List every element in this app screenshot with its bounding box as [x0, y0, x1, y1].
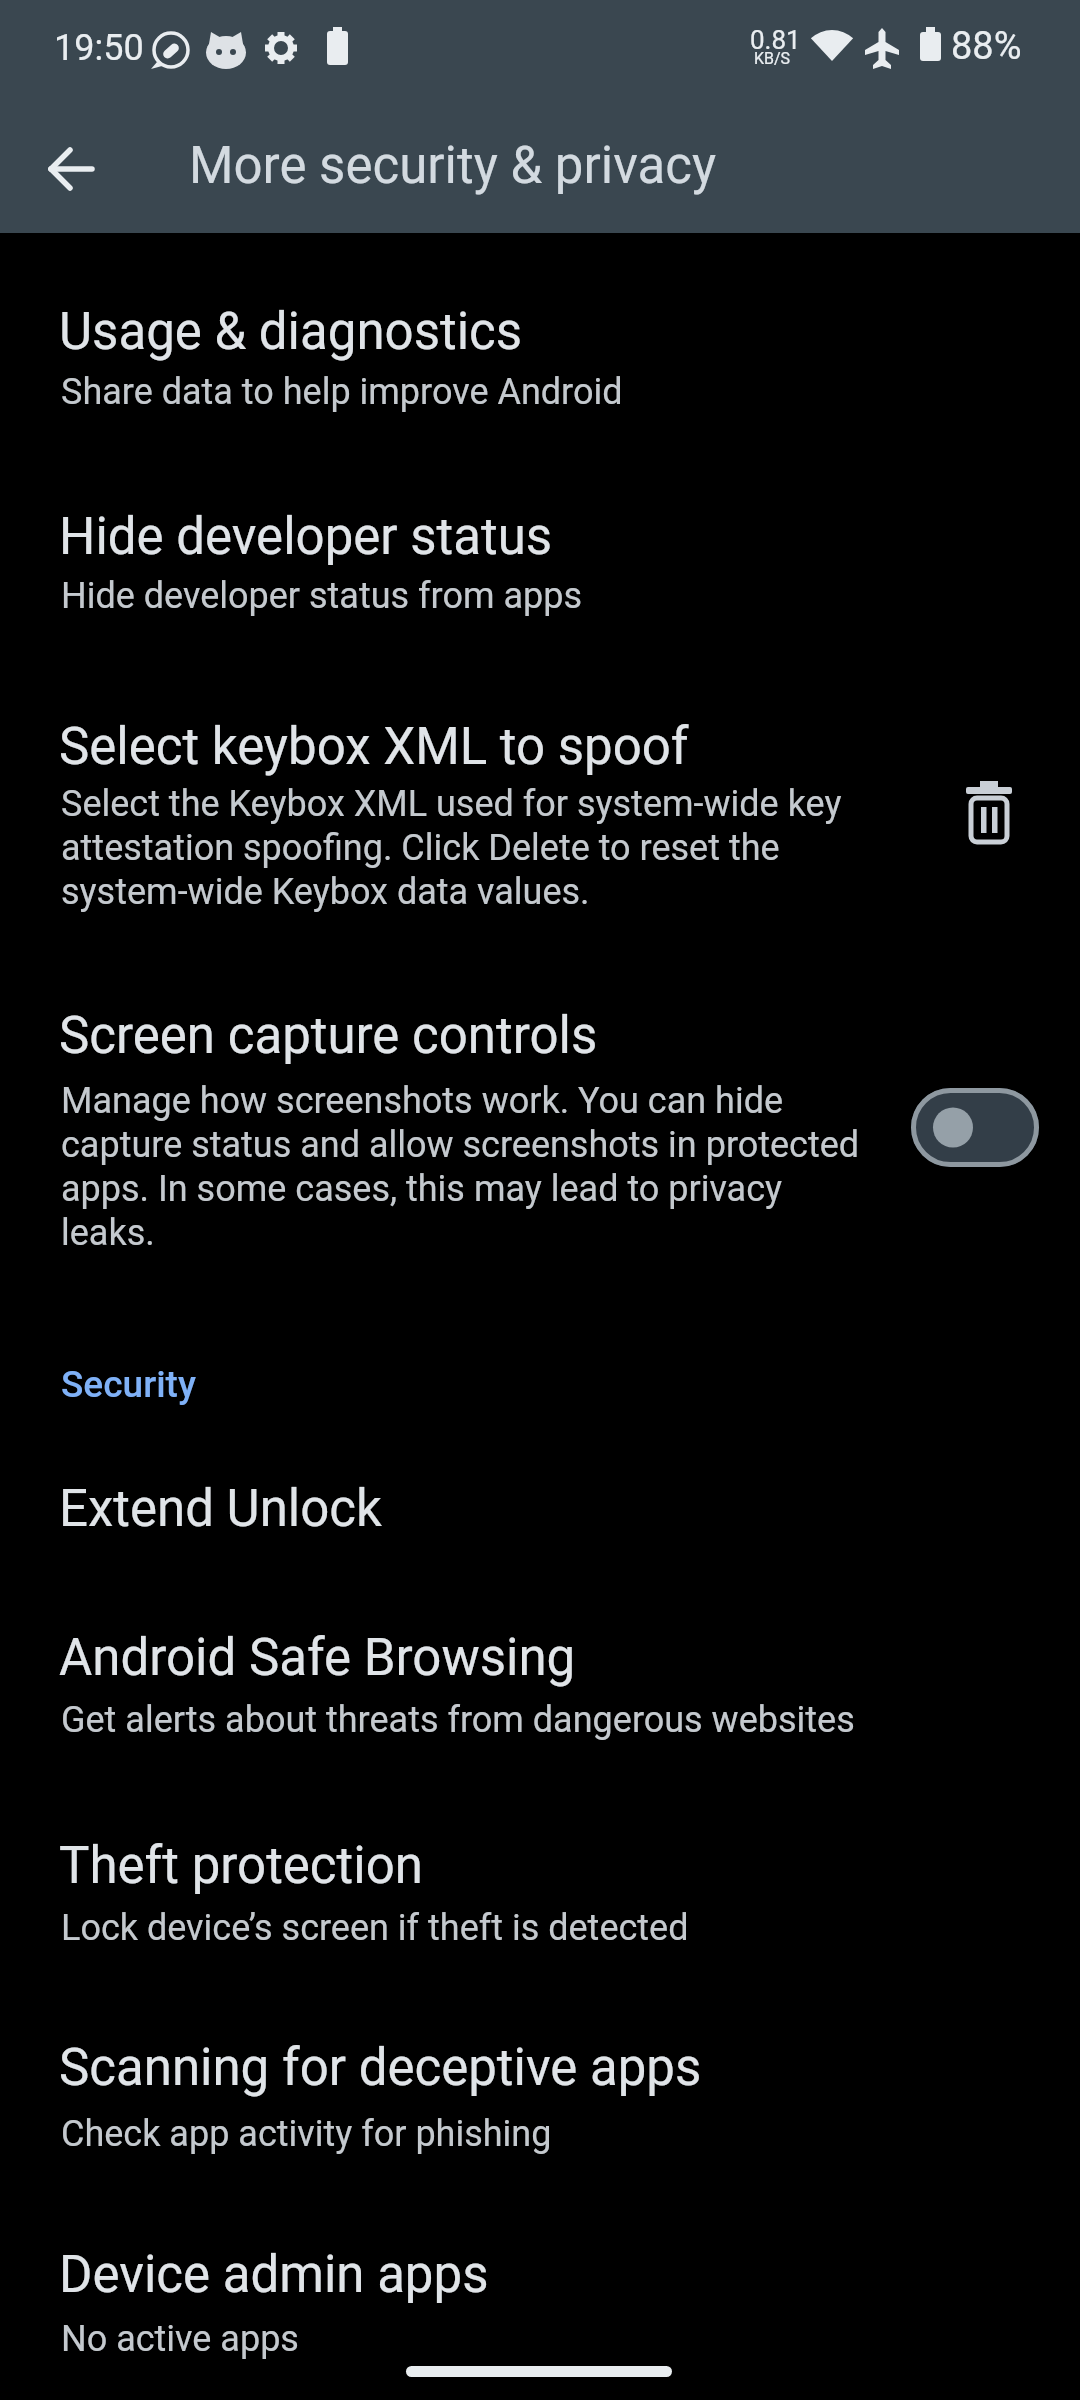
button[interactable]: Theft protection — [0, 1805, 1080, 1985]
staticText: KB/S — [754, 49, 791, 68]
staticText: leaks. — [61, 1212, 155, 1254]
staticText: Security — [61, 1363, 196, 1406]
staticText: Select keybox XML to spoof — [59, 717, 689, 777]
staticText: Hide developer status — [59, 507, 553, 567]
staticText: Usage & diagnostics — [59, 302, 523, 362]
staticText: Manage how screenshots work. You can hid… — [61, 1080, 784, 1122]
staticText: 19:50 — [54, 27, 144, 69]
staticText: Theft protection — [59, 1836, 423, 1896]
staticText: 0.81 — [750, 25, 801, 55]
staticText: No active apps — [61, 2318, 299, 2360]
staticText: Check app activity for phishing — [61, 2113, 552, 2155]
staticText: Scanning for deceptive apps — [59, 2038, 702, 2098]
staticText: Extend Unlock — [59, 1479, 382, 1539]
button[interactable]: Extend Unlock — [0, 1440, 1080, 1570]
button[interactable] — [30, 145, 120, 195]
button[interactable]: Select keybox XML to spoof — [0, 685, 1080, 935]
staticText: system-wide Keybox data values. — [61, 871, 590, 913]
staticText: Device admin apps — [59, 2245, 489, 2305]
staticText: apps. In some cases, this may lead to pr… — [61, 1168, 783, 1210]
staticText: Android Safe Browsing — [59, 1628, 576, 1688]
staticText: Lock device’s screen if theft is detecte… — [61, 1907, 689, 1949]
button[interactable]: Android Safe Browsing — [0, 1595, 1080, 1775]
staticText: Hide developer status from apps — [61, 575, 582, 617]
staticText: Share data to help improve Android — [61, 371, 623, 413]
staticText: Screen capture controls — [59, 1006, 598, 1066]
button[interactable]: Screen capture controls — [0, 975, 1080, 1275]
staticText: attestation spoofing. Click Delete to re… — [61, 827, 780, 869]
staticText: More security & privacy — [189, 136, 717, 196]
button[interactable]: Device admin apps — [0, 2215, 1080, 2400]
button[interactable]: Usage & diagnostics — [0, 270, 1080, 450]
staticText: 88% — [951, 24, 1022, 69]
staticText: Get alerts about threats from dangerous … — [61, 1699, 855, 1741]
button[interactable]: Scanning for deceptive apps — [0, 2008, 1080, 2188]
staticText: Select the Keybox XML used for system-wi… — [61, 783, 842, 825]
button[interactable]: Hide developer status — [0, 475, 1080, 655]
staticText: capture status and allow screenshots in … — [61, 1124, 860, 1166]
